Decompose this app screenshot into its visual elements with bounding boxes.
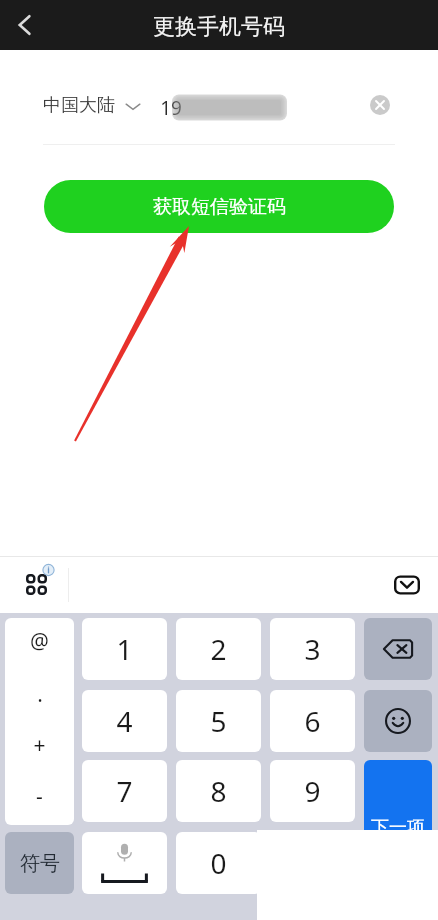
button[interactable]: 8 [176, 760, 261, 822]
button[interactable]: Clear [364, 89, 396, 121]
staticText: 1 [116, 630, 133, 668]
staticText: 4 [116, 702, 133, 740]
staticText: . [37, 680, 43, 709]
button[interactable]: Next [364, 760, 432, 894]
staticText: - [36, 782, 43, 811]
staticText: 0 [210, 844, 227, 882]
button[interactable]: Keyboard panel [18, 566, 58, 606]
button[interactable]: 9 [270, 760, 355, 822]
button[interactable]: 1 [82, 618, 167, 680]
button[interactable]: 4 [82, 690, 167, 752]
button[interactable]: 7 [82, 760, 167, 822]
staticText: 更换手机号码 [153, 13, 285, 41]
staticText: 5 [210, 702, 227, 740]
staticText: 7 [116, 772, 133, 810]
staticText: + [33, 731, 46, 760]
staticText: @ [30, 627, 49, 656]
button[interactable]: Backspace [364, 618, 432, 680]
staticText: 下一项 [371, 816, 425, 839]
staticText: 6 [304, 702, 321, 740]
button[interactable]: 2 [176, 618, 261, 680]
staticText: 获取短信验证码 [153, 195, 286, 219]
button[interactable]: Hide keyboard [387, 565, 427, 605]
button[interactable]: 0 [176, 832, 261, 894]
button[interactable]: 3 [270, 618, 355, 680]
button[interactable]: Space [82, 832, 167, 894]
button[interactable]: 6 [270, 690, 355, 752]
staticText: 2 [210, 630, 227, 668]
staticText: 中国大陆 [43, 94, 115, 117]
button[interactable]: 获取短信验证码 [44, 180, 394, 233]
staticText: 8 [210, 772, 227, 810]
button[interactable]: 符号 [5, 832, 74, 894]
button[interactable]: 中国大陆 [43, 94, 142, 117]
button[interactable]: Back [2, 2, 48, 48]
button[interactable]: 5 [176, 690, 261, 752]
staticText: 19 [160, 95, 182, 121]
button[interactable]: @ [5, 618, 74, 825]
staticText: 符号 [20, 851, 60, 876]
staticText: 3 [304, 630, 321, 668]
button[interactable]: Emoji [364, 690, 432, 752]
staticText: 9 [304, 772, 321, 810]
